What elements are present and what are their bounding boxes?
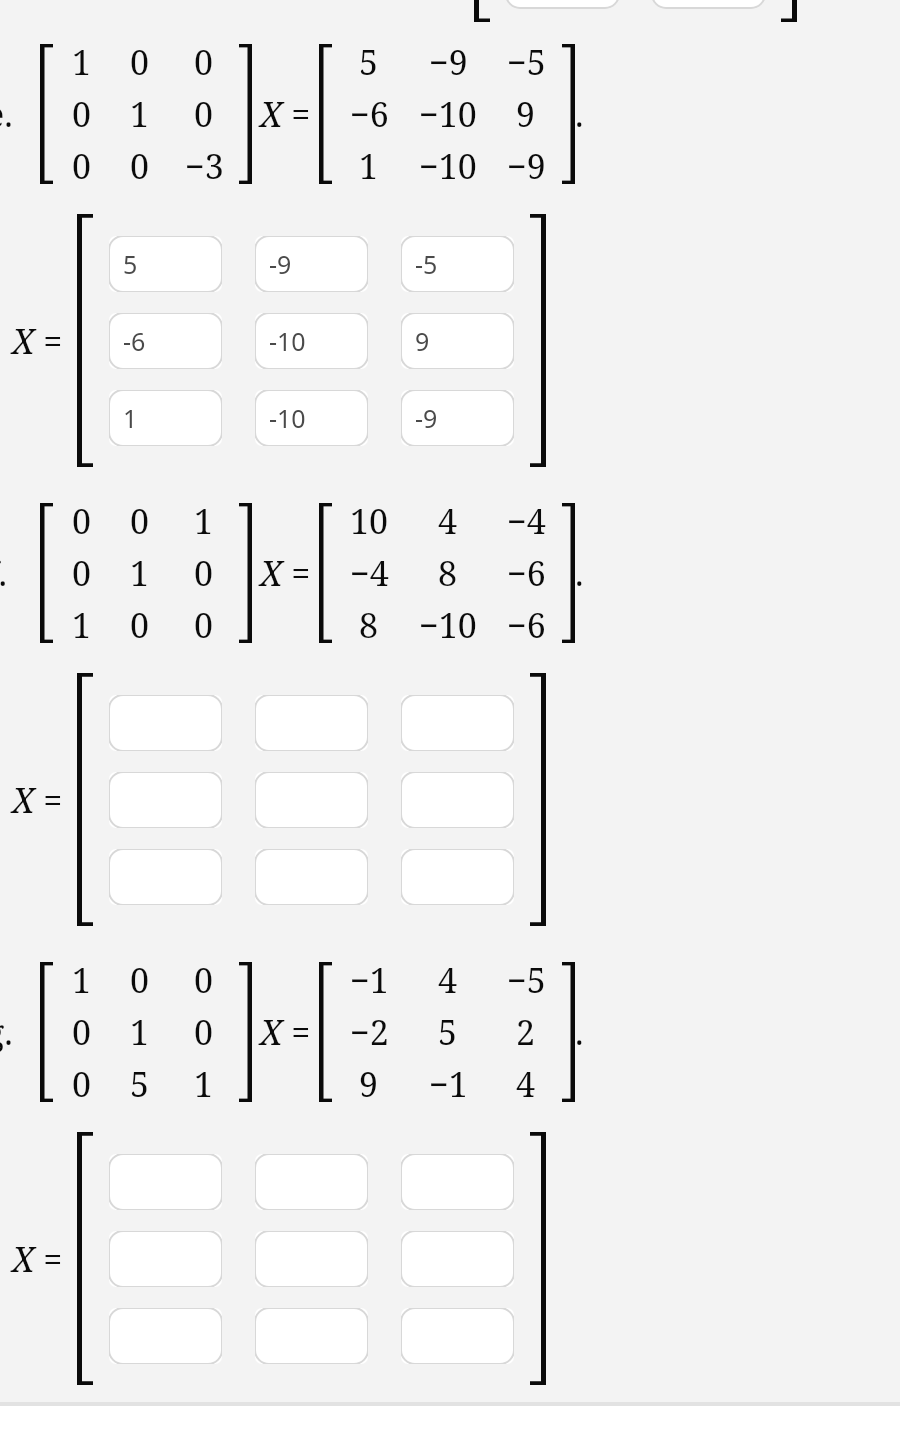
staticText: −4 [350, 550, 389, 596]
button[interactable]: Matrix entry [255, 1154, 368, 1210]
button[interactable]: Matrix entry [401, 849, 514, 905]
button[interactable]: Matrix entry [109, 1154, 222, 1210]
button[interactable]: Matrix entry [401, 772, 514, 828]
staticText: −6 [507, 550, 546, 596]
button[interactable]: Matrix entry [109, 1231, 222, 1287]
staticText: 0 [72, 1009, 92, 1055]
staticText: -6 [123, 324, 146, 358]
staticText: 5 [438, 1009, 458, 1055]
staticText: 1 [194, 1061, 214, 1107]
staticText: 0 [130, 602, 150, 648]
staticText: 4 [516, 1061, 536, 1107]
button[interactable]: Matrix entry [109, 849, 222, 905]
staticText: 1 [72, 602, 92, 648]
staticText: 8 [438, 550, 458, 596]
staticText: 0 [194, 957, 214, 1003]
staticText: 9 [516, 91, 536, 137]
staticText: 8 [359, 602, 379, 648]
staticText: 1 [194, 498, 214, 544]
staticText: e. [0, 91, 26, 137]
staticText: −1 [350, 957, 389, 1003]
staticText: 9 [415, 324, 430, 358]
staticText: -9 [269, 247, 292, 281]
button[interactable]: Matrix entry [255, 236, 368, 292]
button[interactable]: Matrix entry [255, 313, 368, 369]
button[interactable]: Matrix entry [401, 1308, 514, 1364]
button[interactable]: Matrix entry [255, 695, 368, 751]
button[interactable]: Matrix entry [255, 772, 368, 828]
staticText: −5 [507, 957, 546, 1003]
staticText: 1 [72, 957, 92, 1003]
staticText: X = [12, 777, 63, 823]
staticText: -10 [269, 324, 306, 358]
staticText: X = [260, 91, 311, 137]
staticText: −10 [419, 602, 477, 648]
staticText: 1 [130, 550, 150, 596]
staticText: 5 [130, 1061, 150, 1107]
staticText: 10 [350, 498, 389, 544]
staticText: 0 [130, 143, 150, 189]
staticText: 5 [123, 247, 138, 281]
staticText: 4 [438, 498, 458, 544]
staticText: . [575, 1009, 584, 1055]
button[interactable]: Matrix entry [109, 390, 222, 446]
staticText: 0 [194, 550, 214, 596]
staticText: 0 [194, 1009, 214, 1055]
staticText: −3 [185, 143, 224, 189]
button[interactable]: Matrix entry [255, 1308, 368, 1364]
staticText: −10 [419, 91, 477, 137]
staticText: 1 [72, 39, 92, 85]
staticText: . [575, 91, 584, 137]
staticText: f. [0, 550, 26, 596]
staticText: -9 [415, 401, 438, 435]
staticText: −4 [507, 498, 546, 544]
button[interactable]: Matrix entry [255, 390, 368, 446]
staticText: −6 [507, 602, 546, 648]
staticText: X = [12, 318, 63, 364]
button[interactable]: Matrix entry [109, 1308, 222, 1364]
staticText: −5 [507, 39, 546, 85]
staticText: 1 [130, 91, 150, 137]
button[interactable]: Matrix entry [401, 390, 514, 446]
staticText: X = [260, 1009, 311, 1055]
staticText: g. [0, 1009, 26, 1055]
staticText: 0 [130, 39, 150, 85]
button[interactable]: Matrix entry [401, 313, 514, 369]
staticText: -5 [415, 247, 438, 281]
staticText: −2 [350, 1009, 389, 1055]
staticText: 9 [359, 1061, 379, 1107]
staticText: 1 [359, 143, 379, 189]
staticText: 0 [194, 91, 214, 137]
button[interactable]: Matrix entry [401, 1154, 514, 1210]
staticText: 0 [72, 498, 92, 544]
staticText: 0 [72, 1061, 92, 1107]
button[interactable]: Matrix entry [109, 236, 222, 292]
button[interactable]: Matrix entry [255, 849, 368, 905]
staticText: 0 [72, 550, 92, 596]
staticText: −10 [419, 143, 477, 189]
staticText: −9 [507, 143, 546, 189]
staticText: −9 [429, 39, 468, 85]
button[interactable]: Matrix entry [401, 236, 514, 292]
staticText: . [575, 550, 584, 596]
button[interactable]: Matrix entry [109, 695, 222, 751]
staticText: 1 [123, 401, 138, 435]
button[interactable]: Matrix entry [401, 695, 514, 751]
staticText: 0 [72, 143, 92, 189]
staticText: 0 [194, 39, 214, 85]
button[interactable]: Matrix entry [109, 313, 222, 369]
staticText: 1 [130, 1009, 150, 1055]
staticText: -10 [269, 401, 306, 435]
staticText: X = [260, 550, 311, 596]
staticText: 0 [72, 91, 92, 137]
staticText: 0 [194, 602, 214, 648]
staticText: X = [12, 1236, 63, 1282]
button[interactable]: Matrix entry [255, 1231, 368, 1287]
button[interactable]: Matrix entry [401, 1231, 514, 1287]
button[interactable]: Matrix entry [109, 772, 222, 828]
staticText: 2 [516, 1009, 536, 1055]
staticText: 0 [130, 498, 150, 544]
staticText: 0 [130, 957, 150, 1003]
staticText: −6 [350, 91, 389, 137]
staticText: 5 [359, 39, 379, 85]
